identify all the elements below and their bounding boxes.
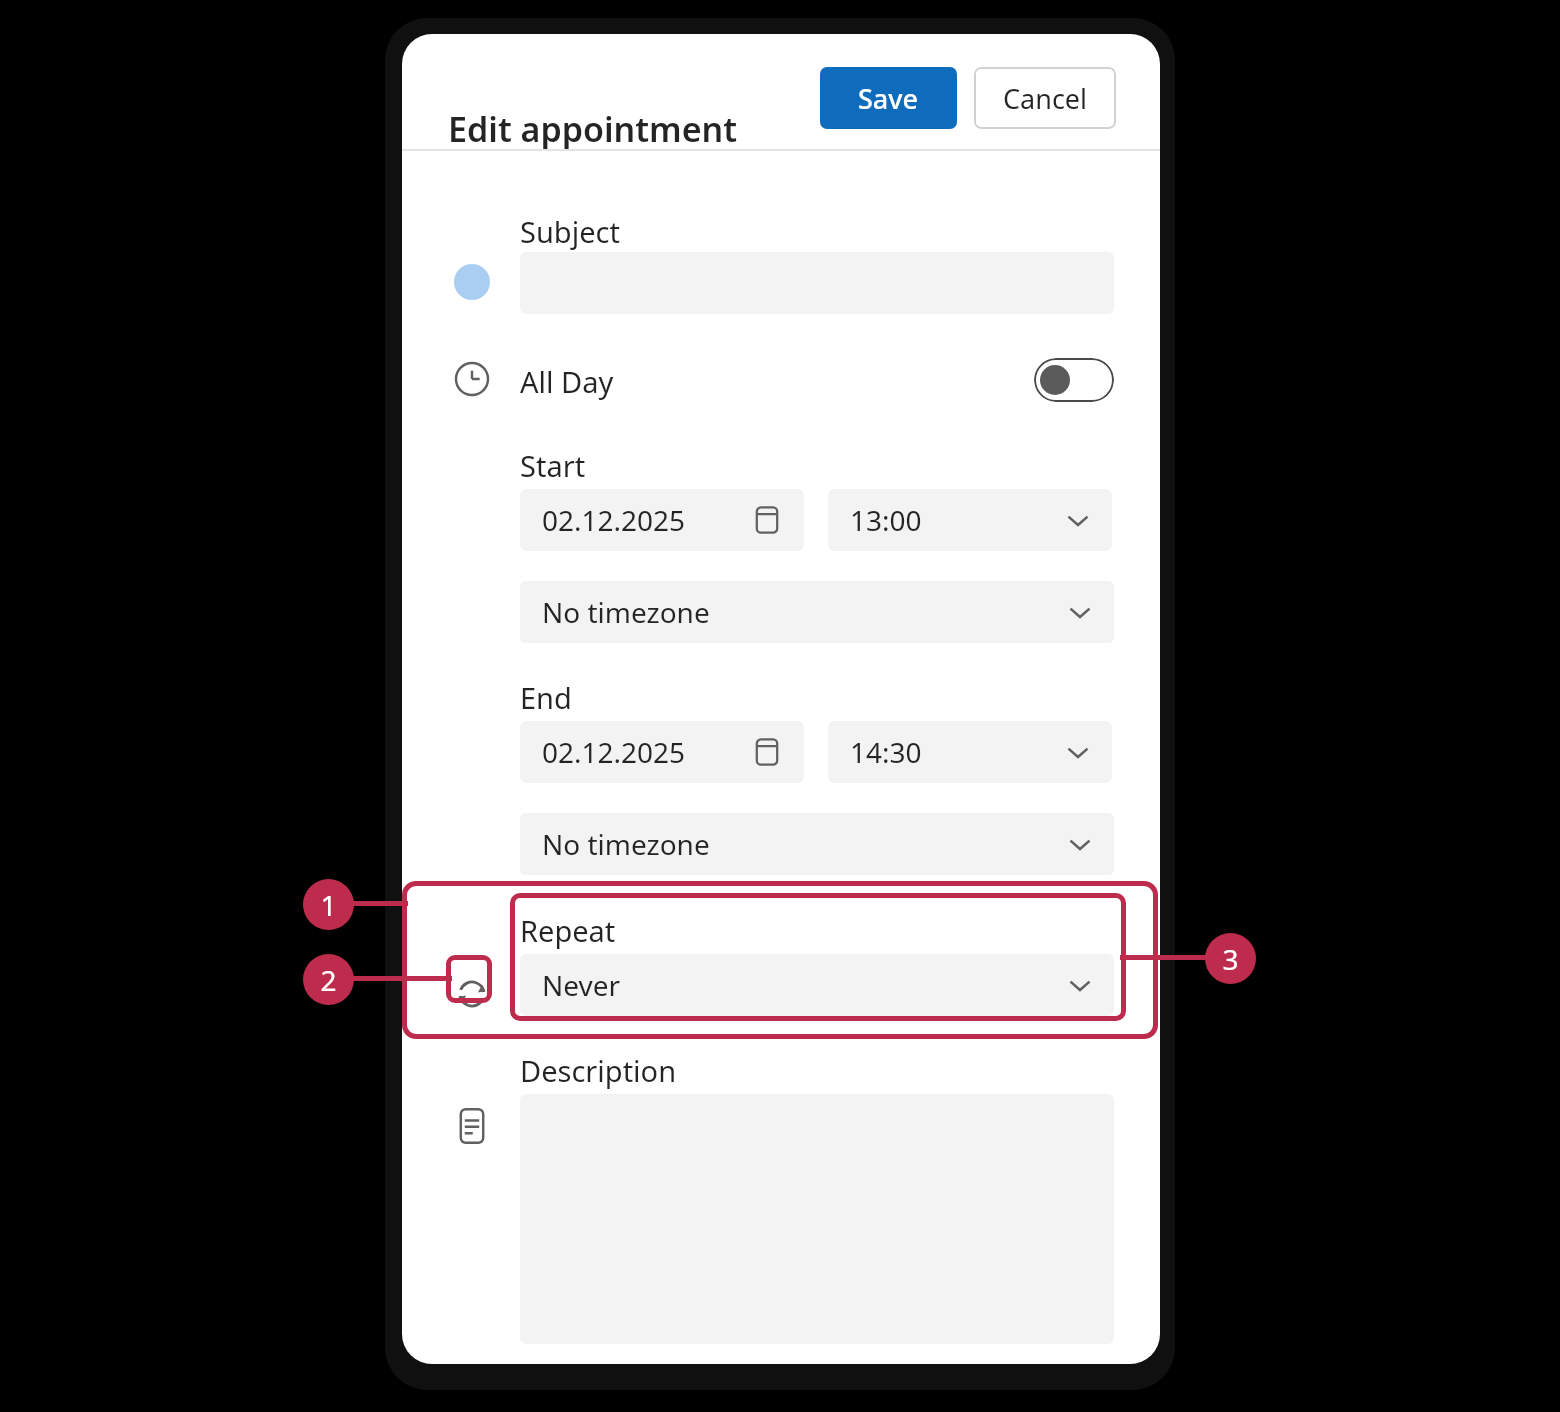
- staticText: 1: [320, 886, 337, 924]
- staticText: 02.12.2025: [542, 733, 686, 771]
- staticText: Never: [542, 966, 621, 1004]
- staticText: Save: [858, 80, 919, 117]
- staticText: No timezone: [542, 825, 710, 863]
- staticText: 3: [1222, 940, 1239, 978]
- staticText: 13:00: [850, 501, 922, 539]
- button[interactable]: 02.12.2025: [520, 489, 804, 551]
- staticText: Description: [520, 1051, 677, 1090]
- button[interactable]: 14:30: [828, 721, 1112, 783]
- other: Description: [452, 1106, 492, 1146]
- staticText: Repeat: [520, 911, 616, 950]
- button[interactable]: Edit appointment: [448, 106, 738, 152]
- staticText: Start: [520, 446, 586, 485]
- button[interactable]: 3: [1205, 933, 1256, 984]
- staticText: Subject: [520, 212, 620, 251]
- staticText: End: [520, 678, 572, 717]
- button[interactable]: Save: [820, 67, 957, 129]
- staticText: 2: [320, 961, 337, 999]
- button[interactable]: 2: [303, 954, 354, 1005]
- other: Repeat: [452, 974, 492, 1014]
- button[interactable]: No timezone: [520, 813, 1114, 875]
- button[interactable]: 1: [303, 879, 354, 930]
- staticText: No timezone: [542, 593, 710, 631]
- staticText: Cancel: [1003, 80, 1088, 117]
- button[interactable]: All Day toggle: [1034, 358, 1114, 402]
- button[interactable]: No timezone: [520, 581, 1114, 643]
- staticText: Edit appointment: [448, 106, 738, 152]
- button[interactable]: 02.12.2025: [520, 721, 804, 783]
- staticText: 14:30: [850, 733, 922, 771]
- button[interactable]: Never: [520, 954, 1114, 1016]
- button[interactable]: 13:00: [828, 489, 1112, 551]
- button[interactable]: Cancel: [974, 67, 1116, 129]
- staticText: 02.12.2025: [542, 501, 686, 539]
- staticText: All Day: [520, 362, 614, 401]
- button[interactable]: Category colour: [454, 264, 490, 300]
- other: Time: [452, 359, 492, 399]
